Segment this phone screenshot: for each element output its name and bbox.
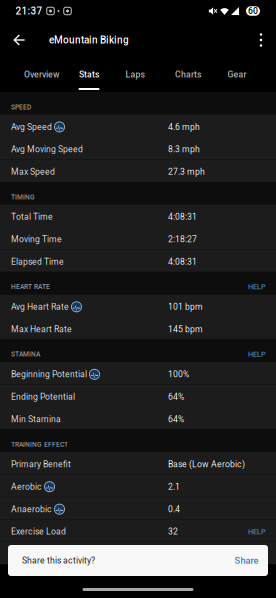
staticText: 64% (168, 392, 184, 402)
staticText: Min Stamina (11, 414, 61, 424)
button[interactable]: Back (0, 22, 38, 58)
button[interactable]: Beginning Potential (0, 362, 276, 384)
staticText: Resting Calories (11, 549, 74, 559)
staticText: Avg Speed (11, 122, 52, 132)
staticText: 60 (248, 6, 258, 16)
button[interactable]: Anaerobic (0, 497, 276, 519)
staticText: Laps (125, 69, 144, 79)
staticText: Share this activity? (22, 555, 95, 566)
staticText: Primary Benefit (11, 459, 71, 469)
staticText: 2.1 (168, 482, 180, 492)
staticText: 100% (168, 369, 189, 379)
staticText: HELP (248, 350, 266, 358)
staticText: TIMING (11, 193, 35, 201)
staticText: HEART RATE (11, 283, 50, 291)
staticText: 4:08:31 (168, 257, 197, 267)
staticText: STAMINA (11, 350, 40, 358)
button[interactable]: Avg Heart Rate (0, 294, 276, 317)
button[interactable]: Elapsed Time (0, 249, 276, 272)
staticText: Max Speed (11, 167, 55, 177)
staticText: 145 bpm (168, 324, 203, 334)
staticText: Ending Potential (11, 392, 75, 402)
staticText: 4:08:31 (168, 212, 197, 222)
staticText: Anaerobic (11, 504, 52, 514)
button[interactable]: Resting Calories (0, 542, 276, 564)
button[interactable]: Ending Potential (0, 384, 276, 407)
staticText: Share (234, 555, 258, 566)
button[interactable]: Min Stamina (0, 407, 276, 429)
staticText: Max Heart Rate (11, 324, 72, 334)
staticText: Avg Heart Rate (11, 302, 69, 312)
button[interactable]: Aerobic (0, 474, 276, 497)
button[interactable]: Overview (13, 58, 70, 92)
staticText: Aerobic (11, 482, 42, 492)
button[interactable]: Laps (108, 58, 162, 92)
button[interactable]: Moving Time (0, 227, 276, 249)
staticText: TRAINING EFFECT (11, 441, 68, 448)
staticText: Moving Time (11, 234, 62, 244)
button[interactable]: HELP (248, 350, 266, 358)
button[interactable]: Charts (162, 58, 214, 92)
staticText: Exercise Load (11, 526, 66, 537)
button[interactable]: HELP (248, 282, 266, 291)
staticText: HELP (248, 282, 266, 291)
button[interactable]: Avg Moving Speed (0, 137, 276, 159)
staticText: 32 (168, 526, 178, 537)
button[interactable]: Total Time (0, 204, 276, 227)
button[interactable]: More options (250, 22, 272, 58)
staticText: 101 bpm (168, 302, 203, 312)
staticText: Gear (227, 69, 246, 79)
button[interactable]: Gear (214, 58, 260, 92)
button[interactable]: Primary Benefit (0, 452, 276, 474)
staticText: Stats (79, 69, 99, 79)
staticText: Beginning Potential (11, 369, 87, 379)
staticText: HELP (248, 527, 266, 536)
staticText: 21:37 (15, 5, 42, 17)
staticText: Avg Moving Speed (11, 144, 83, 154)
staticText: 2:18:27 (168, 234, 197, 244)
staticText: 64% (168, 414, 184, 424)
button[interactable]: Avg Speed (0, 115, 276, 137)
staticText: 4.6 mph (168, 122, 200, 132)
staticText: 27.3 mph (168, 167, 205, 177)
button[interactable]: Max Speed (0, 159, 276, 182)
staticText: Base (Low Aerobic) (168, 459, 245, 469)
staticText: Overview (24, 69, 59, 79)
staticText: SPEED (11, 103, 31, 111)
staticText: Charts (175, 69, 201, 79)
button[interactable]: Stats (70, 58, 108, 92)
button[interactable]: Exercise Load (0, 519, 276, 542)
staticText: 8.3 mph (168, 144, 200, 154)
staticText: 0.4 (168, 504, 180, 514)
staticText: Total Time (11, 212, 53, 222)
staticText: Elapsed Time (11, 257, 64, 267)
button[interactable]: Max Heart Rate (0, 317, 276, 339)
staticText: eMountain Biking (49, 34, 129, 46)
button[interactable]: Share (224, 555, 258, 566)
